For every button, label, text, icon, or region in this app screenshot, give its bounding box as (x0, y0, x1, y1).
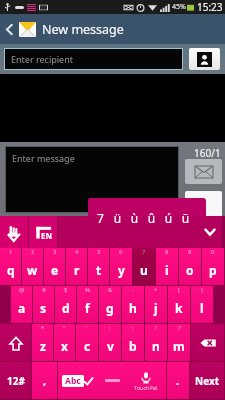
staticText: * (41, 324, 45, 332)
staticText: n (152, 338, 160, 354)
button[interactable]: 8 (156, 248, 178, 285)
staticText: ū (177, 210, 194, 226)
staticText: g (106, 300, 114, 316)
button[interactable]: Enter recipient (4, 48, 183, 70)
button[interactable]: More candidates (204, 226, 216, 238)
staticText: c (84, 338, 91, 354)
button[interactable]: Choose contact (189, 48, 220, 70)
button[interactable]: 2 (22, 248, 43, 285)
button[interactable]: 3 (44, 248, 65, 285)
button[interactable]: Back (0, 14, 19, 44)
staticText: û (143, 210, 160, 226)
button[interactable]: & (99, 286, 121, 323)
staticText: d (62, 300, 70, 316)
staticText: 12# (7, 374, 25, 388)
staticText: ( (178, 286, 180, 294)
button[interactable]: 6 (110, 248, 132, 285)
staticText: 1 (9, 248, 13, 256)
staticText: a (18, 300, 26, 316)
staticText: h (129, 300, 137, 316)
button[interactable]: ' (76, 324, 98, 361)
staticText: y (118, 262, 125, 278)
staticText: 4 (75, 248, 79, 256)
staticText: : (109, 324, 111, 332)
staticText: 9 (188, 248, 192, 256)
button[interactable]: * (32, 324, 53, 361)
staticText: Next (195, 374, 220, 388)
button[interactable]: % (77, 286, 98, 323)
staticText: 7 (92, 210, 109, 226)
staticText: v (107, 338, 114, 354)
staticText: , (43, 373, 47, 388)
button[interactable]: 7 (133, 248, 155, 285)
staticText: & (108, 286, 113, 294)
staticText: ) (201, 286, 203, 294)
button[interactable]: $ (55, 286, 76, 323)
button[interactable]: ; (122, 324, 144, 361)
button[interactable]: 4 (66, 248, 87, 285)
button[interactable]: 1 (0, 248, 21, 285)
staticText: 5 (97, 248, 101, 256)
staticText: w (27, 262, 38, 278)
staticText: ; (132, 324, 134, 332)
staticText: @ (19, 286, 25, 294)
button[interactable]: # (33, 286, 54, 323)
button[interactable]: Input language (29, 216, 57, 248)
staticText: 6 (119, 248, 123, 256)
staticText: . (176, 373, 180, 388)
staticText: i (165, 262, 169, 278)
staticText: t (96, 262, 102, 278)
staticText: l (200, 300, 204, 316)
button[interactable]: ! (145, 324, 167, 361)
button[interactable]: Hide keyboard (0, 216, 28, 248)
staticText: + (154, 286, 158, 294)
staticText: TouchPal (134, 384, 158, 391)
button[interactable]: 9 (179, 248, 201, 285)
button[interactable]: Backspace (191, 324, 224, 361)
button[interactable]: . (167, 362, 189, 399)
button[interactable]: : (99, 324, 121, 361)
staticText: m (173, 338, 185, 354)
staticText: x (61, 338, 68, 354)
staticText: 2 (31, 248, 35, 256)
staticText: New message (42, 21, 124, 38)
button[interactable]: ) (191, 286, 213, 323)
button[interactable]: " (54, 324, 75, 361)
staticText: ú (160, 210, 177, 226)
staticText: % (85, 286, 90, 294)
button[interactable]: 5 (88, 248, 109, 285)
staticText: j (154, 300, 158, 316)
button[interactable]: Shift (0, 324, 31, 361)
staticText: - (132, 286, 134, 294)
staticText: q (7, 262, 15, 278)
staticText: 7 (142, 248, 146, 256)
button[interactable]: ? (168, 324, 190, 361)
button[interactable]: Enter message (5, 146, 179, 213)
staticText: 0 (211, 248, 215, 256)
button[interactable] (88, 198, 206, 217)
staticText: ù (126, 210, 143, 226)
button[interactable]: , (32, 362, 57, 399)
button[interactable]: - (122, 286, 144, 323)
button[interactable]: Space (58, 362, 166, 399)
staticText: 3 (53, 248, 57, 256)
button[interactable]: + (145, 286, 167, 323)
button[interactable]: Send message (185, 159, 222, 184)
button[interactable] (58, 216, 222, 248)
staticText: f (85, 300, 90, 316)
button[interactable]: Attach (185, 191, 222, 217)
staticText: u (140, 262, 148, 278)
button[interactable]: 0 (202, 248, 224, 285)
staticText: Enter message (12, 152, 75, 164)
staticText: 8 (165, 248, 169, 256)
staticText: Abc (65, 375, 81, 387)
staticText: 160/1 (194, 146, 221, 160)
staticText: o (186, 262, 194, 278)
button[interactable]: Next (190, 362, 224, 399)
button[interactable]: ( (168, 286, 190, 323)
button[interactable]: @ (11, 286, 32, 323)
staticText: ? (178, 324, 181, 332)
staticText: 45% (172, 2, 186, 12)
staticText: p (209, 262, 217, 278)
button[interactable]: 12# (0, 362, 31, 399)
